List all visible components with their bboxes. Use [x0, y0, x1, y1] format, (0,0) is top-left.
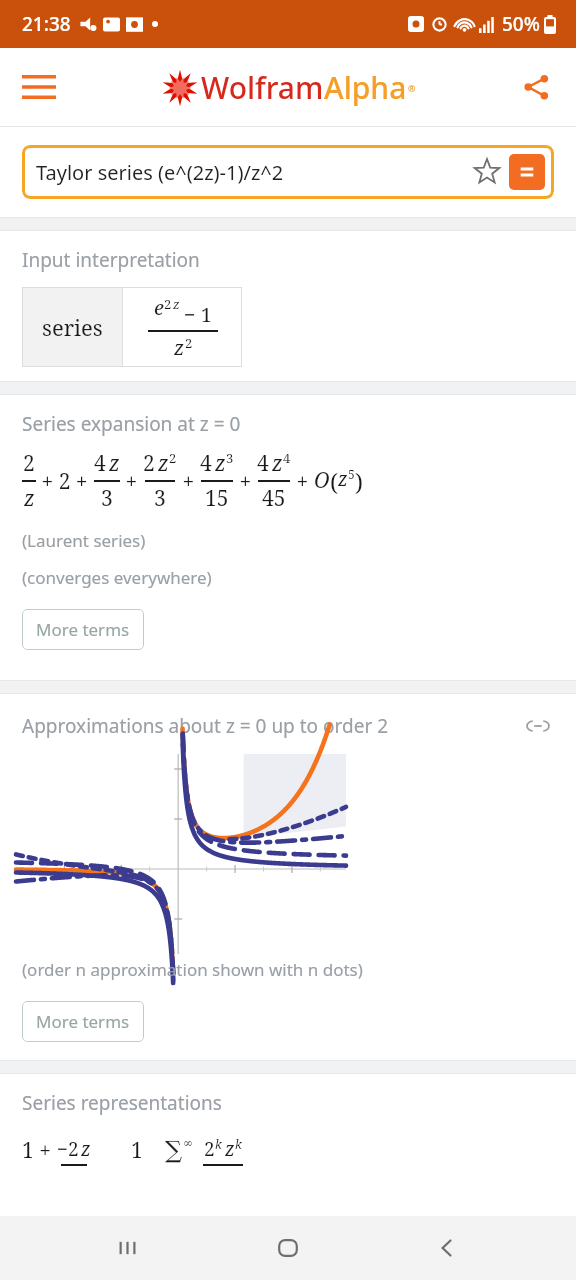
staticText: z [174, 334, 185, 361]
staticText: 2 [23, 449, 35, 478]
staticText: 3 [101, 484, 113, 513]
staticText: z [24, 484, 35, 513]
staticText: 3 [154, 484, 166, 513]
staticText: More terms [36, 618, 130, 641]
button[interactable]: Share [510, 61, 562, 113]
staticText: series [42, 312, 103, 342]
staticText: −2 [57, 1136, 79, 1162]
staticText: 5 [348, 466, 355, 482]
staticText: 1 [131, 1136, 143, 1165]
staticText: + 2 + [36, 467, 94, 496]
staticText: 1 + [22, 1136, 57, 1165]
staticText: 45 [262, 484, 286, 513]
staticText: 2 [204, 1136, 215, 1162]
staticText: 4 [200, 449, 212, 478]
staticText: (converges everywhere) [22, 566, 212, 589]
button[interactable]: Keyboard [509, 154, 545, 190]
staticText: ( [330, 466, 338, 497]
staticText: 2 [143, 449, 155, 478]
staticText: (order n approximation shown with n dots… [22, 958, 363, 981]
staticText: ∑ [165, 1136, 183, 1164]
staticText: 3 [226, 449, 234, 467]
button[interactable]: Back [417, 1218, 477, 1278]
staticText: Alpha [324, 67, 407, 108]
button[interactable]: Favorite [469, 154, 505, 190]
staticText: 2 [185, 334, 193, 352]
staticText: z [173, 295, 180, 313]
button[interactable]: More terms [22, 609, 144, 650]
staticText: 2 [169, 449, 177, 467]
staticText: − 1 [184, 301, 212, 328]
staticText: 21:38 [22, 11, 71, 37]
button[interactable]: More terms [22, 1001, 144, 1042]
staticText: Wolfram [201, 67, 324, 108]
staticText: z [158, 449, 169, 478]
staticText: z [81, 1136, 91, 1162]
staticText: k [235, 1136, 242, 1152]
button[interactable]: Menu [10, 58, 68, 116]
staticText: More terms [36, 1010, 130, 1033]
staticText: + [291, 467, 314, 496]
button[interactable]: Home [258, 1218, 318, 1278]
staticText: ® [408, 82, 416, 94]
button[interactable]: Link [522, 710, 554, 742]
staticText: ∞ [183, 1136, 193, 1150]
staticText: z [338, 466, 348, 492]
staticText: Series expansion at z = 0 [22, 411, 241, 437]
staticText: z [272, 449, 283, 478]
staticText: + [177, 467, 200, 496]
staticText: z [215, 449, 226, 478]
staticText: 4 [94, 449, 106, 478]
staticText: e [154, 294, 164, 321]
staticText: 50% [502, 11, 540, 37]
staticText: (Laurent series) [22, 529, 146, 552]
button[interactable]: Taylor series (e^(2z)-1)/z^2 [22, 145, 554, 199]
staticText: 2 [164, 295, 172, 313]
staticText: z [225, 1136, 235, 1162]
staticText: Series representations [22, 1090, 222, 1116]
staticText: Approximations about z = 0 up to order 2 [22, 713, 522, 739]
staticText: ) [355, 466, 363, 497]
staticText: 4 [283, 449, 291, 467]
staticText: Taylor series (e^(2z)-1)/z^2 [36, 159, 469, 186]
staticText: + [120, 467, 143, 496]
staticText: 4 [257, 449, 269, 478]
staticText: k [215, 1136, 222, 1152]
staticText: z [109, 449, 120, 478]
staticText: 15 [205, 484, 229, 513]
button[interactable]: Recents [99, 1218, 159, 1278]
staticText: + [234, 467, 257, 496]
staticText: Input interpretation [22, 247, 200, 273]
staticText: O [314, 466, 330, 495]
